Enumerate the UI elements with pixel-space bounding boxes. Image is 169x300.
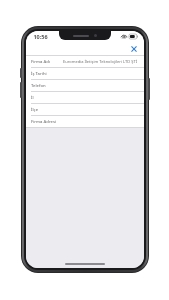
button[interactable]: İl: [26, 92, 144, 103]
staticText: Firma Adresi: [31, 119, 63, 125]
staticText: 10:56: [33, 33, 48, 40]
button[interactable]: İş Tarihi: [26, 68, 144, 79]
staticText: İş Tarihi: [31, 71, 63, 77]
staticText: Telefon: [31, 83, 63, 89]
button[interactable]: Kapat: [129, 44, 139, 54]
staticText: Firma Adı: [31, 59, 63, 65]
button[interactable]: Telefon: [26, 80, 144, 91]
staticText: İl: [31, 95, 63, 101]
staticText: Euromedia İletişim Teknolojileri LTD ŞTİ: [63, 59, 139, 64]
button[interactable]: İlçe: [26, 104, 144, 115]
button[interactable]: Firma Adı: [26, 56, 144, 67]
staticText: İlçe: [31, 107, 63, 113]
button[interactable]: Firma Adresi: [26, 116, 144, 127]
